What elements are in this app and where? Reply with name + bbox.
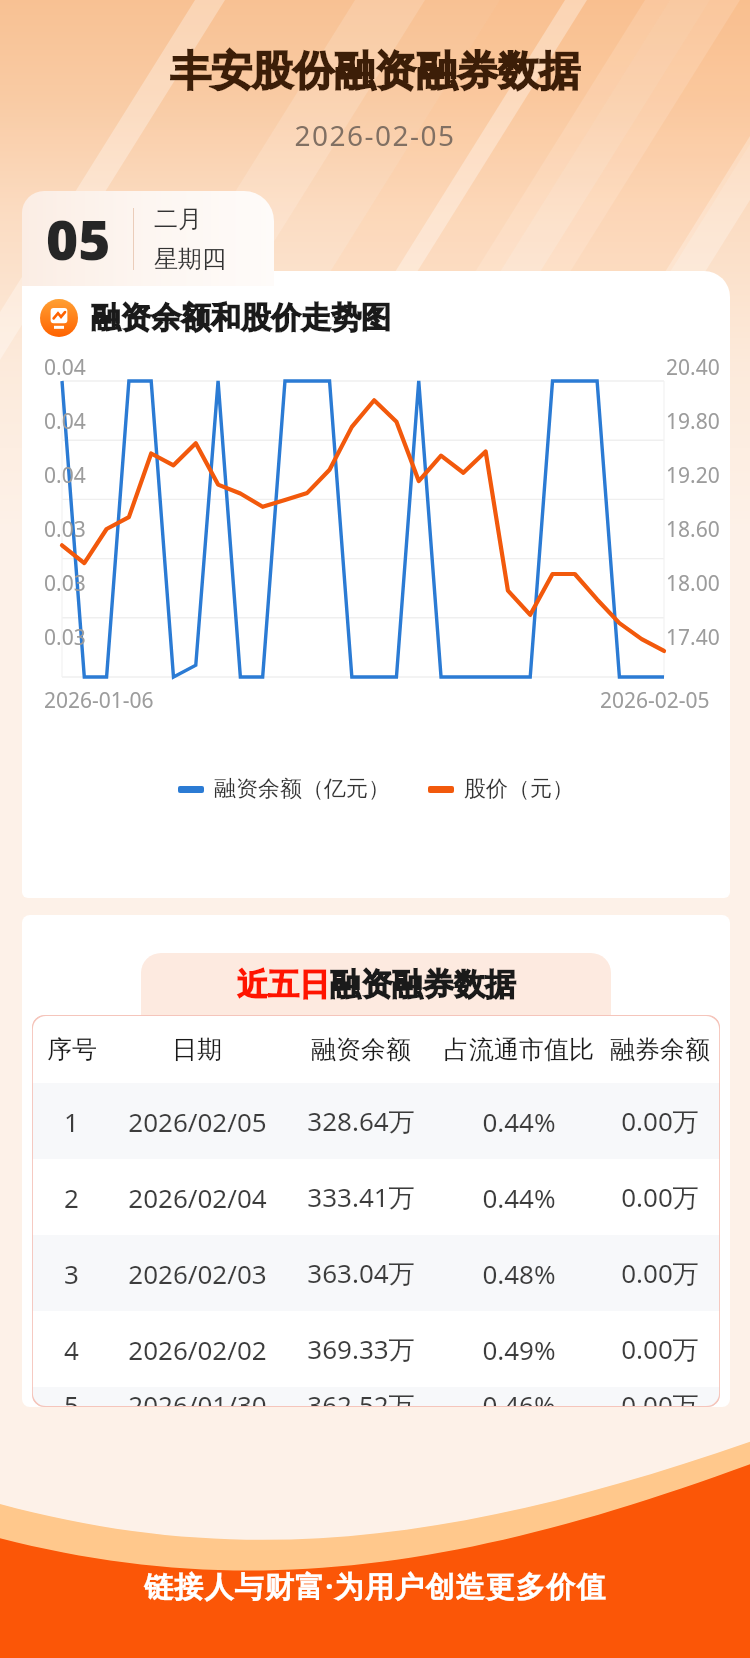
staticText: 0.04	[44, 407, 86, 436]
staticText: 占流通市值比	[444, 1034, 594, 1065]
staticText: 融资余额	[311, 1034, 411, 1065]
button[interactable]: 股价（元）	[424, 769, 578, 809]
staticText: 362.52万	[307, 1387, 415, 1407]
staticText: 2026/01/30	[128, 1387, 267, 1407]
staticText: 4	[64, 1332, 79, 1367]
staticText: 2026-01-06	[44, 686, 154, 715]
staticText: 近五日融资融券数据	[237, 965, 516, 1004]
staticText: 2026/02/04	[128, 1180, 267, 1215]
staticText: 融券余额	[610, 1034, 710, 1065]
staticText: 链接人与财富·为用户创造更多价值	[144, 1566, 607, 1606]
button[interactable]: 2	[32, 1159, 720, 1235]
staticText: 05	[46, 201, 111, 276]
staticText: 0.00万	[621, 1103, 699, 1139]
staticText: 0.04	[44, 353, 86, 382]
staticText: 0.00万	[621, 1387, 699, 1407]
staticText: 363.04万	[307, 1255, 415, 1291]
staticText: 0.44%	[482, 1104, 556, 1139]
button[interactable]: 5	[32, 1387, 720, 1407]
staticText: 0.03	[44, 623, 86, 652]
staticText: 丰安股份融资融券数据	[0, 46, 750, 98]
button[interactable]: 1	[32, 1083, 720, 1159]
staticText: 19.20	[666, 461, 720, 490]
button[interactable]: Trend chart	[40, 299, 391, 337]
other: Trend chart	[40, 299, 78, 337]
button[interactable]: 4	[32, 1311, 720, 1387]
button[interactable]: 融资余额（亿元）	[174, 769, 394, 809]
staticText: 2026/02/05	[128, 1104, 267, 1139]
staticText: 5	[64, 1387, 79, 1407]
button[interactable]: 3	[32, 1235, 720, 1311]
staticText: 18.60	[666, 515, 720, 544]
staticText: 融资余额和股价走势图	[91, 299, 391, 337]
staticText: 2026/02/03	[128, 1256, 267, 1291]
staticText: 2026-02-05	[600, 686, 710, 715]
staticText: 369.33万	[307, 1331, 415, 1367]
staticText: 0.03	[44, 515, 86, 544]
staticText: 0.46%	[482, 1387, 556, 1407]
staticText: 1	[64, 1104, 79, 1139]
staticText: 333.41万	[307, 1179, 415, 1215]
staticText: 18.00	[666, 569, 720, 598]
staticText: 0.00万	[621, 1331, 699, 1367]
staticText: 序号	[47, 1034, 97, 1065]
staticText: 星期四	[154, 244, 226, 274]
button[interactable]: 05	[22, 191, 274, 286]
staticText: 2	[64, 1180, 79, 1215]
staticText: 328.64万	[307, 1103, 415, 1139]
staticText: 17.40	[666, 623, 720, 652]
staticText: 0.03	[44, 569, 86, 598]
staticText: 融资余额（亿元）	[214, 775, 390, 803]
button[interactable]: 序号	[32, 1015, 720, 1083]
staticText: 0.00万	[621, 1179, 699, 1215]
staticText: 日期	[172, 1034, 222, 1065]
staticText: 股价（元）	[464, 775, 574, 803]
staticText: 0.04	[44, 461, 86, 490]
staticText: 2026-02-05	[0, 116, 750, 154]
staticText: 0.49%	[482, 1332, 556, 1367]
staticText: 0.48%	[482, 1256, 556, 1291]
staticText: 二月	[154, 204, 202, 234]
staticText: 0.00万	[621, 1255, 699, 1291]
staticText: 20.40	[666, 353, 720, 382]
staticText: 0.44%	[482, 1180, 556, 1215]
staticText: 3	[64, 1256, 79, 1291]
staticText: 19.80	[666, 407, 720, 436]
staticText: 2026/02/02	[128, 1332, 267, 1367]
